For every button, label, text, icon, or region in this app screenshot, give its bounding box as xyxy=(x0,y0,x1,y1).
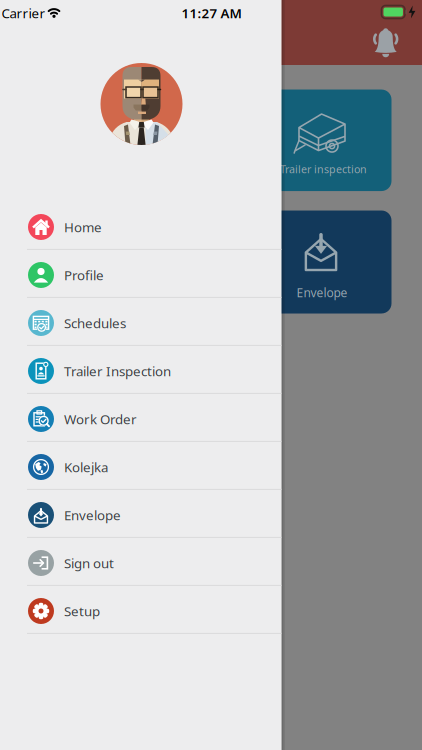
staticText: Trailer inspection xyxy=(280,162,367,176)
staticText: Home xyxy=(64,218,102,236)
staticText: Envelope xyxy=(296,284,347,300)
button[interactable]: Schedules xyxy=(0,299,281,347)
button[interactable]: Home xyxy=(0,203,281,251)
staticText: Setup xyxy=(64,602,100,620)
staticText: Schedules xyxy=(64,314,126,332)
button[interactable]: Profile xyxy=(0,251,281,299)
staticText: Carrier xyxy=(1,4,45,22)
staticText: Sign out xyxy=(64,554,114,572)
staticText: Kolejka xyxy=(64,458,108,476)
button[interactable]: Envelope xyxy=(250,210,391,313)
staticText: Envelope xyxy=(64,506,121,524)
button[interactable]: Work Order xyxy=(0,395,281,443)
button[interactable]: Notifications xyxy=(372,26,400,58)
button[interactable]: Setup xyxy=(0,587,281,635)
button[interactable]: Envelope xyxy=(0,491,281,539)
button[interactable]: Kolejka xyxy=(0,443,281,491)
button[interactable]: Sign out xyxy=(0,539,281,587)
staticText: Trailer Inspection xyxy=(64,362,171,380)
button[interactable]: Trailer inspection xyxy=(250,90,391,191)
button[interactable]: Trailer Inspection xyxy=(0,347,281,395)
staticText: Profile xyxy=(64,266,104,284)
staticText: 11:27 AM xyxy=(181,4,241,22)
staticText: Work Order xyxy=(64,410,137,428)
